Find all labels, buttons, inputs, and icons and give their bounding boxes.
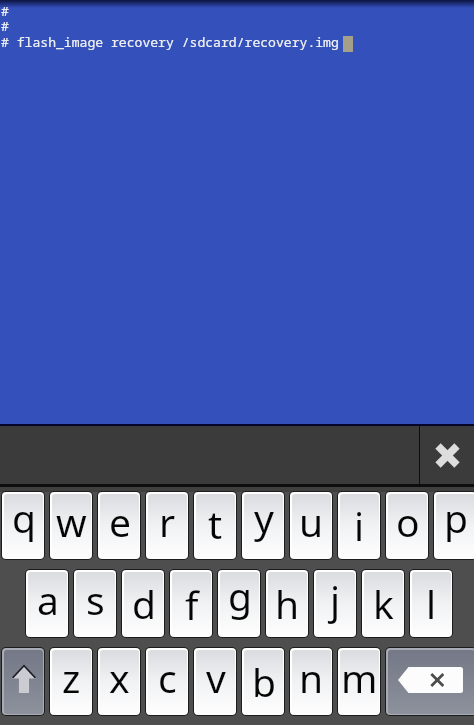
staticText: l [426,577,437,630]
button[interactable]: w [49,491,93,560]
staticText: y [254,494,274,544]
staticText: n [299,651,324,704]
staticText: o [396,495,420,548]
staticText: # [1,2,9,20]
staticText: # [1,17,9,35]
staticText: h [275,577,300,630]
button[interactable]: s [73,569,117,638]
staticText: f [185,578,199,631]
staticText: b [252,655,276,708]
button[interactable]: z [49,647,93,716]
staticText: v [206,651,226,704]
button[interactable]: e [97,491,141,560]
button[interactable]: n [289,647,333,716]
button[interactable]: Shift [1,647,45,716]
button[interactable]: c [145,647,189,716]
staticText: w [56,495,87,548]
button[interactable]: x [97,647,141,716]
button[interactable]: g [217,569,261,638]
staticText: d [132,577,156,630]
button[interactable]: Delete [385,647,474,716]
staticText: e [109,495,131,548]
staticText: k [373,577,394,630]
button[interactable]: o [385,491,429,560]
button[interactable]: i [337,491,381,560]
button[interactable]: m [337,647,381,716]
staticText: q [12,494,36,544]
staticText: g [228,572,252,622]
staticText: j [330,573,341,626]
staticText: p [444,494,468,544]
staticText: x [109,651,130,704]
staticText: s [86,573,105,626]
button[interactable]: y [241,491,285,560]
button[interactable]: v [193,647,237,716]
button[interactable]: f [169,569,213,638]
staticText: i [354,499,365,552]
staticText: m [341,651,378,704]
button[interactable]: j [313,569,357,638]
button[interactable]: q [1,491,45,560]
staticText: z [62,651,81,704]
staticText: c [158,651,177,704]
button[interactable]: k [361,569,405,638]
button[interactable]: a [25,569,69,638]
staticText: r [159,495,176,548]
button[interactable]: p [433,491,474,560]
staticText: t [208,497,223,550]
button[interactable]: Close window [420,426,474,484]
button[interactable]: u [289,491,333,560]
button[interactable]: l [409,569,453,638]
staticText: a [37,573,59,626]
button[interactable]: d [121,569,165,638]
button[interactable]: h [265,569,309,638]
button[interactable]: r [145,491,189,560]
staticText: # flash_image recovery /sdcard/recovery.… [1,33,339,51]
button[interactable]: t [193,491,237,560]
staticText: u [299,495,324,548]
button[interactable]: b [241,647,285,716]
